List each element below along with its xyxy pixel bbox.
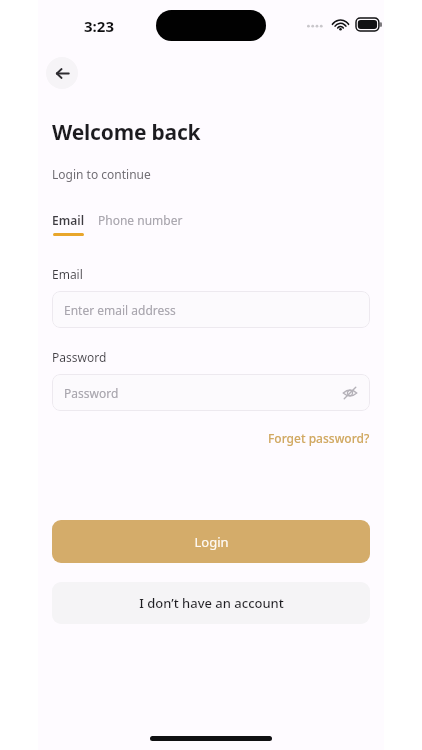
staticText: Password [64, 385, 119, 401]
button[interactable]: Phone number [98, 212, 183, 228]
staticText: Enter email address [64, 302, 176, 318]
button[interactable]: Password [52, 374, 370, 411]
button[interactable]: Show password [340, 383, 360, 403]
staticText: Login [194, 533, 229, 551]
button[interactable]: Forget password? [268, 430, 370, 446]
staticText: Password [52, 349, 107, 365]
button[interactable]: Login [52, 520, 370, 563]
button[interactable]: I don’t have an account [52, 582, 370, 624]
staticText: Forget password? [268, 430, 370, 446]
button[interactable]: Back [46, 57, 78, 89]
staticText: Email [52, 212, 85, 228]
staticText: Welcome back [52, 118, 201, 147]
staticText: Phone number [98, 212, 183, 228]
staticText: I don’t have an account [139, 594, 284, 612]
staticText: Email [52, 266, 83, 282]
staticText: 3:23 [84, 16, 114, 36]
button[interactable]: Email [52, 212, 85, 236]
button[interactable]: Enter email address [52, 291, 370, 328]
staticText: Login to continue [52, 166, 151, 182]
